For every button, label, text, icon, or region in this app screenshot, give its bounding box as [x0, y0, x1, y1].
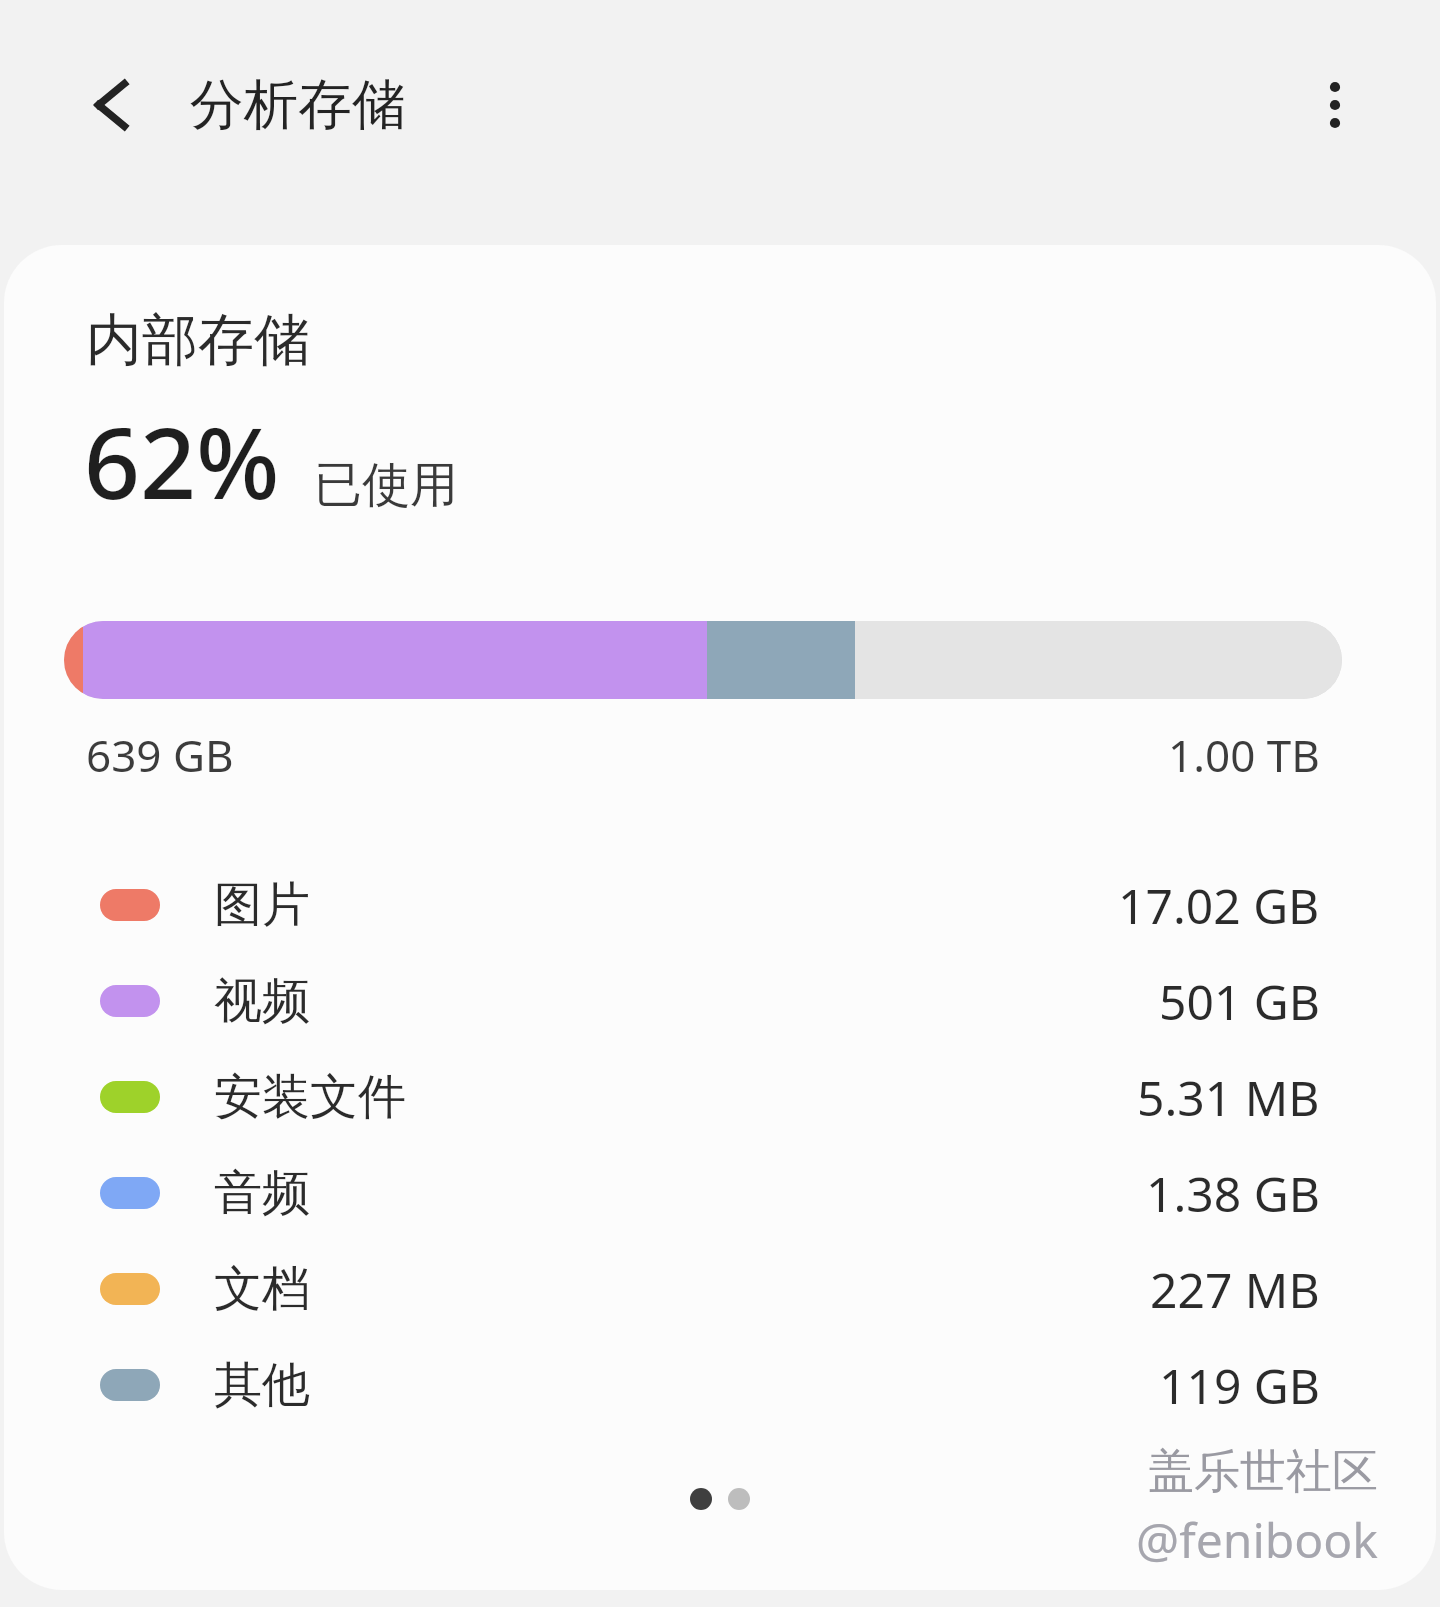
- button[interactable]: 音频: [4, 1145, 1436, 1241]
- staticText: 17.02 GB: [1118, 873, 1320, 938]
- button[interactable]: Page 2: [728, 1488, 750, 1510]
- staticText: 已使用: [314, 455, 458, 515]
- staticText: 内部存储: [86, 305, 310, 376]
- button[interactable]: 视频: [4, 953, 1436, 1049]
- staticText: 盖乐世社区: [1148, 1443, 1378, 1501]
- staticText: 图片: [214, 875, 310, 935]
- staticText: 文档: [214, 1259, 310, 1319]
- button[interactable]: Page 1: [690, 1488, 712, 1510]
- button[interactable]: 图片: [4, 857, 1436, 953]
- button[interactable]: 其他: [4, 1337, 1436, 1433]
- staticText: 227 MB: [1150, 1257, 1320, 1322]
- staticText: 分析存储: [190, 71, 406, 139]
- staticText: 62%: [84, 394, 280, 527]
- staticText: 视频: [214, 971, 310, 1031]
- staticText: 5.31 MB: [1137, 1065, 1320, 1130]
- button[interactable]: More options: [1280, 50, 1390, 160]
- staticText: @fenibook: [1135, 1507, 1378, 1572]
- staticText: 其他: [214, 1355, 310, 1415]
- staticText: 639 GB: [86, 725, 234, 785]
- button[interactable]: 文档: [4, 1241, 1436, 1337]
- staticText: 1.38 GB: [1146, 1161, 1320, 1226]
- staticText: 1.00 TB: [1168, 725, 1320, 785]
- staticText: 119 GB: [1159, 1353, 1320, 1418]
- button[interactable]: Back: [62, 55, 162, 155]
- staticText: 音频: [214, 1163, 310, 1223]
- button[interactable]: 安装文件: [4, 1049, 1436, 1145]
- staticText: 501 GB: [1159, 969, 1320, 1034]
- staticText: 安装文件: [214, 1067, 406, 1127]
